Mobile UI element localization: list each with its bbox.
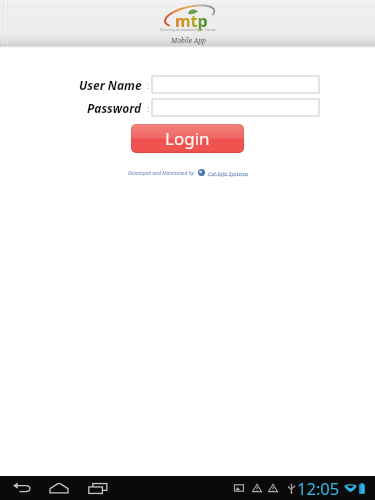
staticText: Login bbox=[165, 127, 210, 150]
staticText: Mobile App bbox=[171, 36, 206, 45]
button[interactable]: Cal-Info Systems bbox=[208, 170, 249, 177]
staticText: User Name bbox=[79, 77, 142, 93]
staticText: : bbox=[147, 79, 150, 91]
staticText: mtp bbox=[175, 10, 208, 32]
staticText: : bbox=[147, 102, 150, 114]
button[interactable] bbox=[152, 76, 319, 93]
staticText: Cal-Info Systems bbox=[208, 170, 249, 177]
staticText: Password bbox=[87, 100, 142, 116]
button[interactable]: Back bbox=[3, 476, 40, 500]
button[interactable] bbox=[152, 99, 319, 116]
button[interactable]: Recent apps bbox=[78, 476, 117, 500]
staticText: 12:05 bbox=[297, 477, 340, 499]
button[interactable]: Home bbox=[40, 476, 78, 500]
staticText: Ensuring Accountability & Transparency bbox=[160, 27, 216, 32]
button[interactable]: Login bbox=[131, 124, 244, 153]
staticText: Developed and Maintained by bbox=[128, 170, 194, 177]
